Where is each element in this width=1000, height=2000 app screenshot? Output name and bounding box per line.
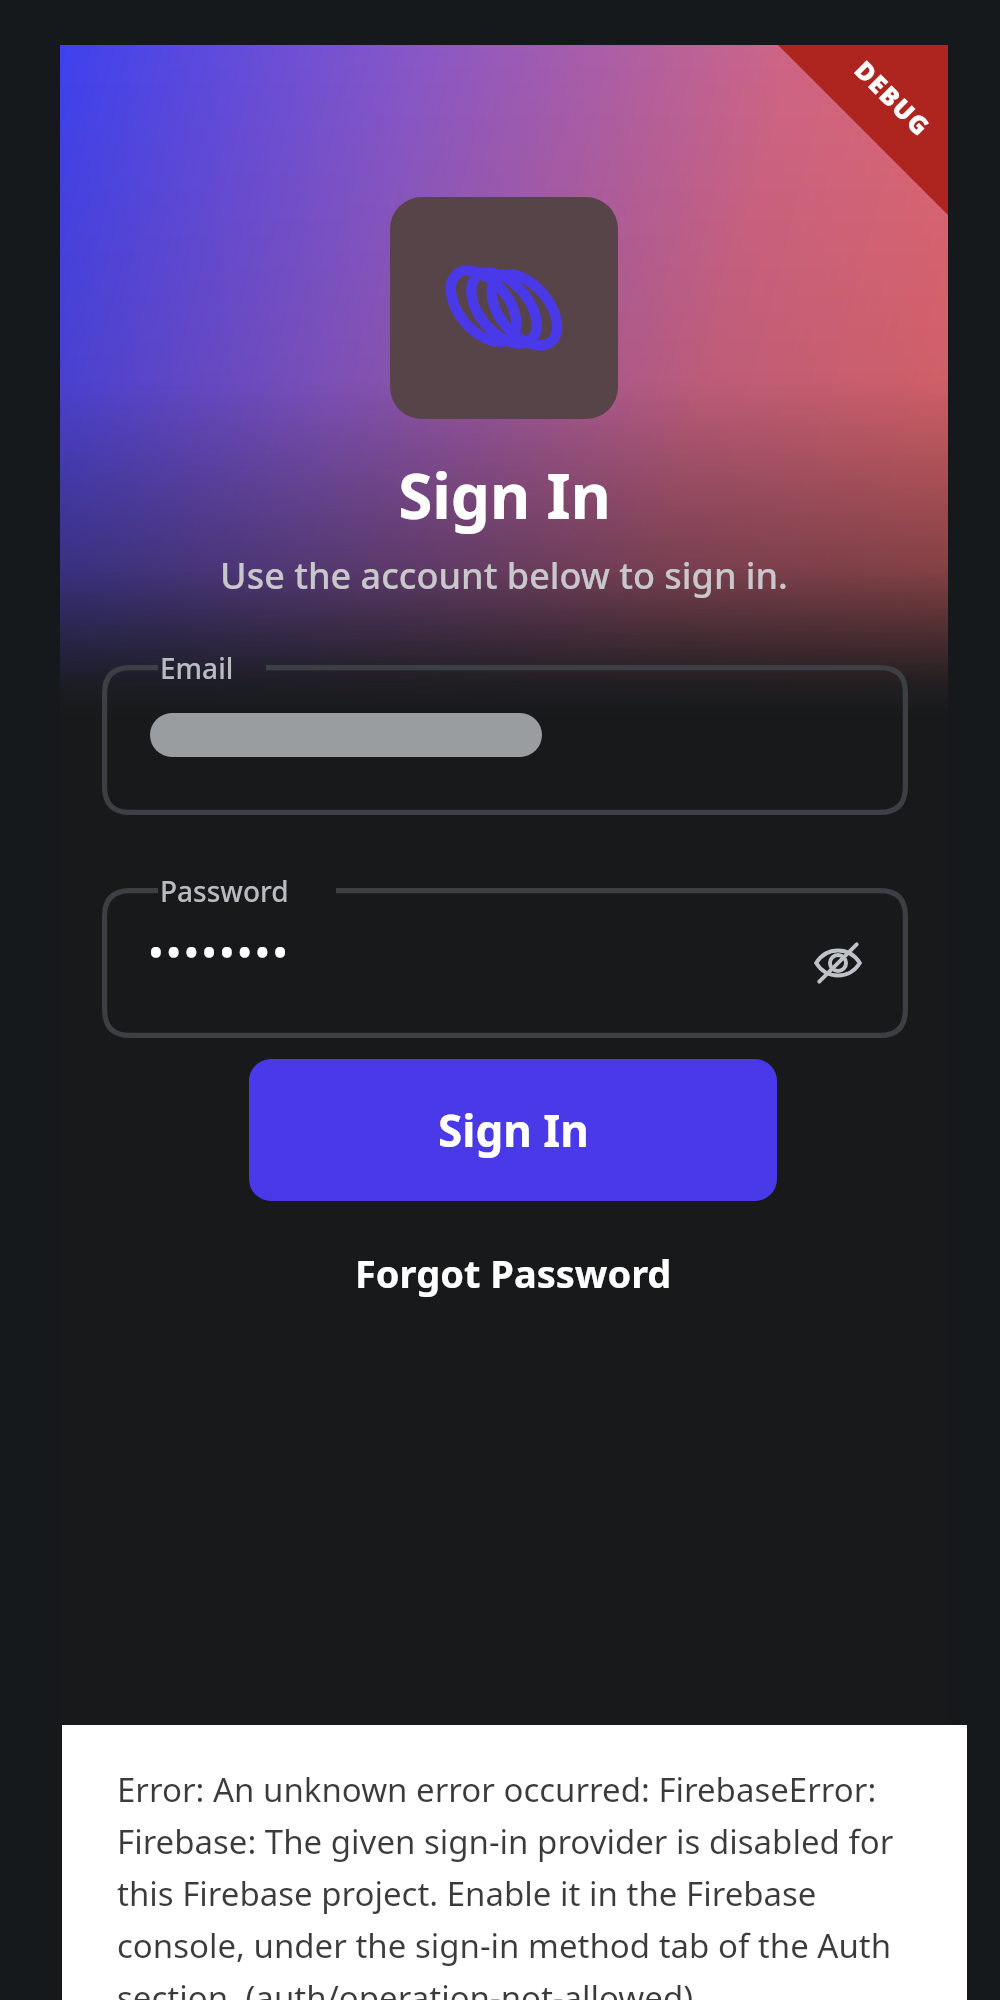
button[interactable]: Sign In: [249, 1059, 777, 1201]
button[interactable]: Show password: [806, 931, 870, 995]
staticText: Password: [160, 872, 289, 910]
button[interactable]: Password: [102, 888, 908, 1038]
button[interactable]: Forgot Password: [249, 1225, 777, 1321]
staticText: Forgot Password: [355, 1247, 672, 1299]
staticText: Email: [160, 649, 234, 687]
staticText: Sign In: [398, 453, 611, 537]
staticText: Error: An unknown error occurred: Fireba…: [117, 1767, 933, 2000]
button[interactable]: Email: [102, 665, 908, 815]
staticText: DEBUG: [848, 53, 938, 143]
staticText: Use the account below to sign in.: [220, 551, 788, 600]
staticText: Sign In: [438, 1100, 589, 1160]
staticText: ••••••••: [150, 932, 293, 973]
